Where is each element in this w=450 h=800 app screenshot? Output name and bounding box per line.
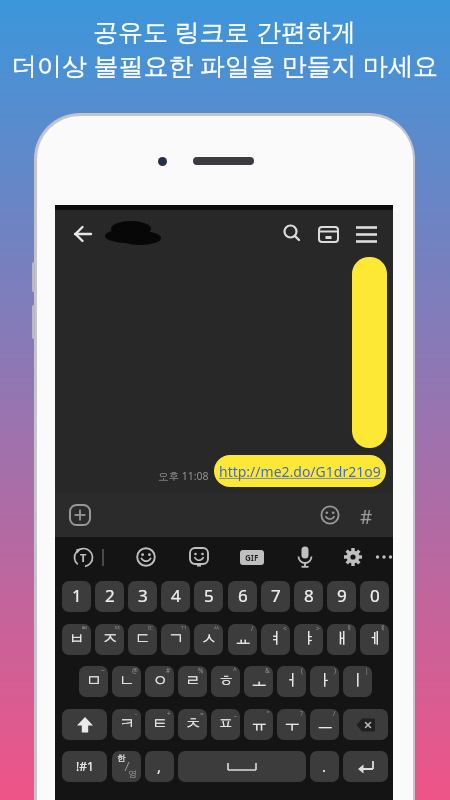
staticText: (: [301, 666, 303, 675]
button[interactable]: !#1: [62, 751, 107, 782]
staticText: ?: [300, 709, 303, 718]
button[interactable]: ㅎ: [211, 666, 240, 697]
staticText: 더이상 불필요한 파일을 만들지 마세요: [12, 48, 439, 82]
staticText: ㅅ: [201, 629, 217, 649]
staticText: ㅂ: [69, 629, 85, 649]
button[interactable]: ㅛ: [228, 624, 257, 655]
button[interactable]: [189, 547, 209, 567]
button[interactable]: 0: [360, 581, 389, 612]
button[interactable]: ,: [145, 751, 174, 782]
button[interactable]: ㅈ: [95, 624, 124, 655]
button[interactable]: ㅓ: [277, 666, 306, 697]
button[interactable]: [73, 224, 93, 244]
button[interactable]: #: [360, 504, 373, 530]
button[interactable]: [343, 709, 388, 740]
staticText: ㅛ: [235, 629, 251, 649]
button[interactable]: 1: [62, 581, 91, 612]
staticText: http://me2.do/G1dr21o9: [219, 462, 381, 481]
staticText: <: [283, 624, 287, 633]
button[interactable]: [178, 751, 306, 782]
staticText: 영: [128, 769, 137, 780]
staticText: 공유도 링크로 간편하게: [93, 14, 357, 48]
staticText: #: [166, 666, 171, 675]
staticText: ㅔ: [367, 629, 383, 649]
button[interactable]: [69, 504, 91, 526]
button[interactable]: ㅕ: [261, 624, 290, 655]
button[interactable]: ㅣ: [343, 666, 372, 697]
staticText: ㅑ: [301, 629, 317, 649]
button[interactable]: ㅠ: [244, 709, 273, 740]
button[interactable]: [375, 554, 393, 560]
staticText: =: [200, 709, 204, 718]
button[interactable]: [343, 751, 388, 782]
staticText: &: [265, 666, 270, 675]
button[interactable]: ㅅ: [194, 624, 223, 655]
staticText: ㅁ: [86, 671, 102, 691]
staticText: ㅕ: [268, 629, 284, 649]
staticText: 한: [117, 753, 126, 764]
button[interactable]: GIF: [240, 550, 264, 565]
button[interactable]: ㅜ: [277, 709, 306, 740]
button[interactable]: .: [310, 751, 339, 782]
staticText: ㅏ: [317, 671, 333, 691]
button[interactable]: 4: [161, 581, 190, 612]
button[interactable]: ㅗ: [244, 666, 273, 697]
button[interactable]: ㅂ: [62, 624, 91, 655]
button[interactable]: ㄴ: [112, 666, 141, 697]
button[interactable]: ㅔ: [360, 624, 389, 655]
button[interactable]: ㅑ: [294, 624, 323, 655]
staticText: 0: [370, 584, 380, 607]
button[interactable]: [320, 505, 340, 525]
staticText: ㅆ: [213, 624, 220, 632]
button[interactable]: ㅋ: [112, 709, 141, 740]
staticText: 3: [138, 584, 148, 607]
button[interactable]: ㄷ: [128, 624, 157, 655]
staticText: @: [132, 666, 138, 675]
staticText: ~: [101, 666, 105, 675]
button[interactable]: ㅐ: [327, 624, 356, 655]
staticText: 오후 11:08: [158, 469, 209, 483]
button[interactable]: [62, 709, 107, 740]
button[interactable]: 2: [95, 581, 124, 612]
staticText: !#1: [76, 758, 94, 774]
staticText: ,: [157, 756, 162, 776]
staticText: 2: [105, 584, 115, 607]
button[interactable]: [136, 547, 156, 567]
button[interactable]: 7: [261, 581, 290, 612]
button[interactable]: ㅊ: [178, 709, 207, 740]
button[interactable]: [343, 547, 363, 567]
button[interactable]: ㅁ: [79, 666, 108, 697]
button[interactable]: 3: [128, 581, 157, 612]
staticText: 1: [72, 584, 82, 607]
button[interactable]: [297, 546, 313, 568]
button[interactable]: ㅍ: [211, 709, 240, 740]
button[interactable]: ㄱ: [161, 624, 190, 655]
button[interactable]: 9: [327, 581, 356, 612]
staticText: ㄷ: [135, 629, 151, 649]
button[interactable]: [356, 226, 377, 243]
staticText: .: [322, 756, 327, 776]
button[interactable]: ㄹ: [178, 666, 207, 697]
staticText: ㄲ: [180, 624, 187, 632]
button[interactable]: [282, 223, 302, 243]
staticText: ㅋ: [119, 714, 135, 734]
button[interactable]: [318, 226, 339, 243]
button[interactable]: [73, 547, 94, 568]
staticText: ㅖ: [379, 624, 386, 632]
staticText: +: [167, 709, 171, 718]
button[interactable]: ㅇ: [145, 666, 174, 697]
button[interactable]: ㅌ: [145, 709, 174, 740]
staticText: ㄱ: [168, 629, 184, 649]
button[interactable]: 8: [294, 581, 323, 612]
button[interactable]: 한: [112, 751, 141, 782]
button[interactable]: http://me2.do/G1dr21o9: [214, 455, 386, 487]
staticText: ㅒ: [346, 624, 353, 632]
button[interactable]: 5: [194, 581, 223, 612]
staticText: ㅗ: [251, 671, 267, 691]
button[interactable]: ㅏ: [310, 666, 339, 697]
button[interactable]: ㅡ: [310, 709, 339, 740]
staticText: /: [251, 624, 254, 633]
staticText: T: [80, 550, 87, 565]
staticText: ㅜ: [284, 714, 300, 734]
button[interactable]: 6: [228, 581, 257, 612]
